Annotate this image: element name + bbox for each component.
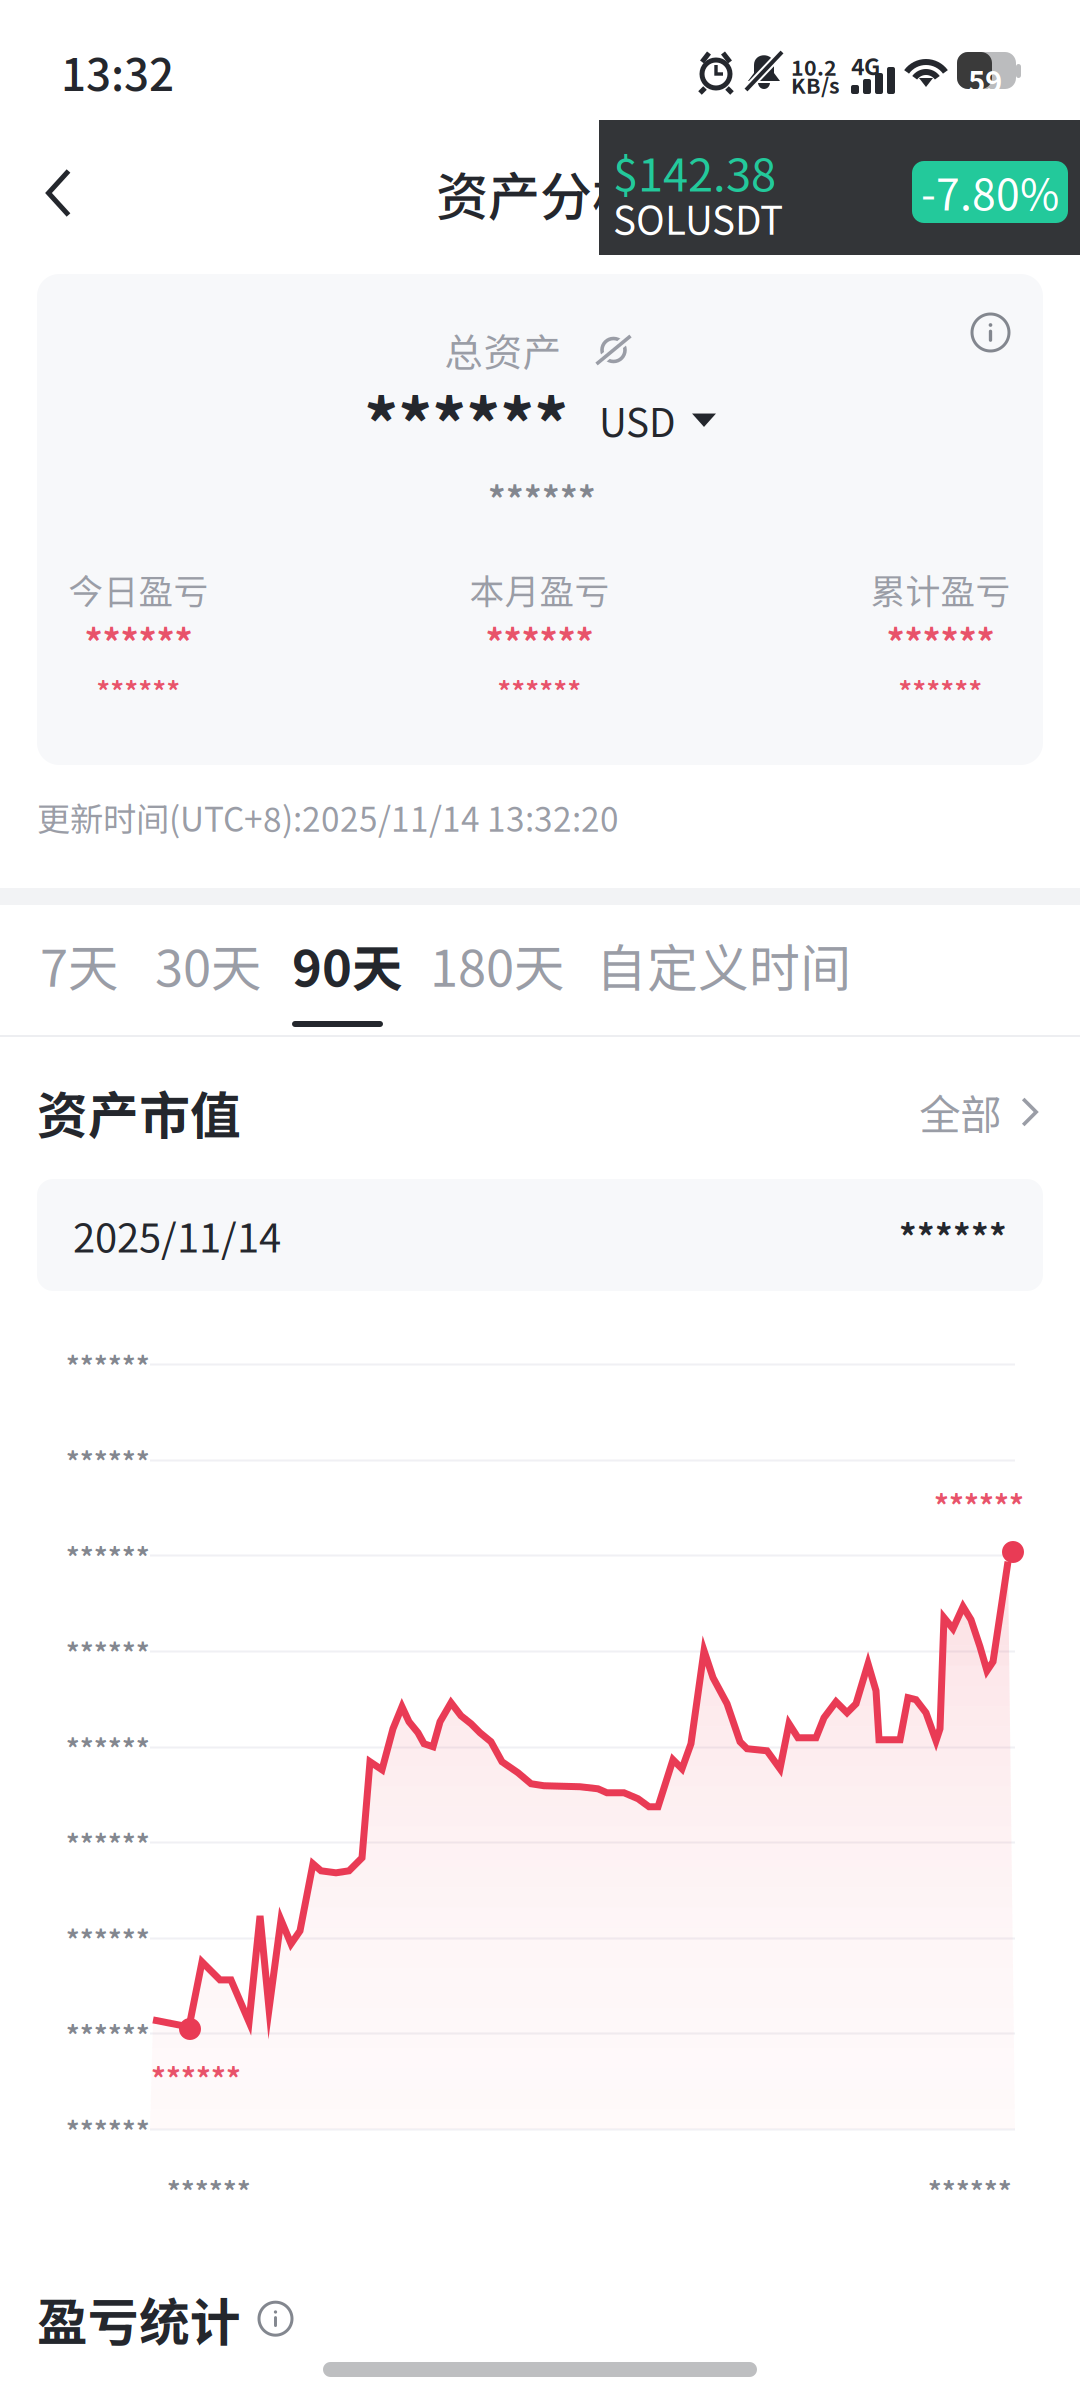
staticText: ******: [497, 670, 581, 709]
button[interactable]: Currency USD: [599, 392, 716, 448]
button[interactable]: Back: [0, 130, 118, 256]
staticText: 10.2: [791, 51, 837, 82]
staticText: ******: [66, 1536, 150, 1574]
staticText: ******: [66, 1632, 150, 1670]
staticText: ******: [485, 614, 593, 666]
staticText: 7天: [40, 928, 119, 1001]
staticText: ******: [66, 1440, 150, 1479]
button[interactable]: 30天: [130, 908, 265, 1033]
staticText: 更新时间(UTC+8):2025/11/14 13:32:20: [37, 793, 619, 841]
staticText: ******: [934, 1483, 1024, 1525]
staticText: ******: [151, 2056, 241, 2098]
staticText: ******: [898, 670, 982, 709]
staticText: ******: [364, 371, 568, 469]
staticText: ******: [66, 1727, 150, 1766]
staticText: 180天: [430, 928, 565, 1001]
staticText: ******: [66, 1823, 150, 1861]
staticText: ******: [167, 2170, 251, 2209]
button[interactable]: 180天: [405, 908, 571, 1033]
staticText: 全部: [919, 1082, 1001, 1142]
staticText: USD: [599, 392, 676, 448]
staticText: 4G: [851, 49, 880, 82]
staticText: 资产分析: [436, 155, 644, 231]
staticText: 自定义时间: [596, 928, 851, 1001]
button[interactable]: Info: [972, 314, 1009, 351]
staticText: 累计盈亏: [870, 564, 1010, 614]
staticText: $142.38: [613, 139, 776, 205]
staticText: KB/s: [791, 69, 840, 100]
button[interactable]: 90天: [267, 908, 408, 1033]
staticText: ******: [886, 614, 994, 666]
button[interactable]: 7天: [15, 908, 126, 1033]
staticText: ******: [84, 614, 192, 666]
staticText: 今日盈亏: [68, 564, 208, 614]
staticText: 30天: [155, 928, 262, 1001]
staticText: 13:32: [61, 40, 174, 104]
button[interactable]: 自定义时间: [571, 908, 827, 1033]
staticText: 盈亏统计: [37, 2282, 241, 2355]
staticText: -7.80%: [921, 161, 1059, 223]
staticText: 本月盈亏: [469, 564, 609, 614]
staticText: 总资产: [444, 322, 561, 378]
staticText: SOLUSDT: [613, 190, 783, 246]
staticText: ******: [928, 2170, 1012, 2209]
staticText: ******: [66, 2110, 150, 2148]
staticText: 2025/11/14: [73, 1206, 281, 1264]
staticText: ******: [66, 1345, 150, 1383]
staticText: ******: [66, 1918, 150, 1957]
button[interactable]: 全部: [919, 1082, 1038, 1142]
staticText: ******: [96, 670, 180, 709]
staticText: 资产市值: [37, 1075, 241, 1149]
staticText: ******: [66, 2014, 150, 2053]
staticText: 90天: [292, 928, 403, 1001]
staticText: 59: [968, 59, 1002, 101]
staticText: ******: [488, 472, 596, 522]
staticText: ******: [899, 1210, 1007, 1260]
button[interactable]: Hide balance: [591, 333, 635, 367]
